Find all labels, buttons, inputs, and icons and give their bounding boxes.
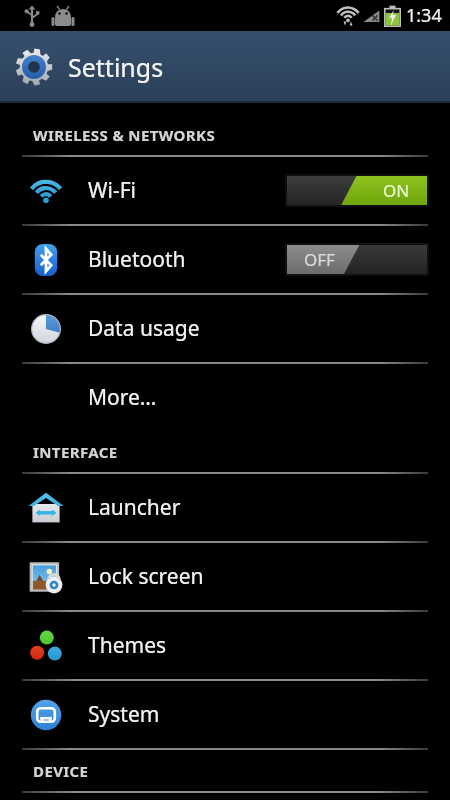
staticText: INTERFACE [33, 442, 118, 462]
staticText: WIRELESS & NETWORKS [33, 125, 216, 145]
button[interactable]: Wi-Fi on [286, 175, 428, 206]
staticText: Wi-Fi [88, 176, 137, 205]
button[interactable]: System [0, 681, 450, 748]
button[interactable]: More… [0, 364, 450, 431]
staticText: Lock screen [88, 562, 204, 591]
button[interactable]: Data usage [0, 295, 450, 362]
staticText: Bluetooth [88, 245, 186, 274]
staticText: ON [383, 179, 410, 202]
staticText: Themes [88, 631, 167, 660]
staticText: More… [88, 383, 157, 412]
staticText: Settings [68, 50, 164, 84]
button[interactable]: Wi-Fi [0, 157, 450, 224]
button[interactable]: Themes [0, 612, 450, 679]
button[interactable]: Bluetooth [0, 226, 450, 293]
button[interactable]: Launcher [0, 474, 450, 541]
button[interactable]: Bluetooth off [286, 244, 428, 275]
staticText: 1:34 [406, 3, 442, 28]
staticText: System [88, 700, 160, 729]
staticText: Data usage [88, 314, 200, 343]
staticText: DEVICE [33, 761, 89, 781]
staticText: OFF [304, 248, 335, 271]
button[interactable]: Lock screen [0, 543, 450, 610]
staticText: Launcher [88, 493, 181, 522]
